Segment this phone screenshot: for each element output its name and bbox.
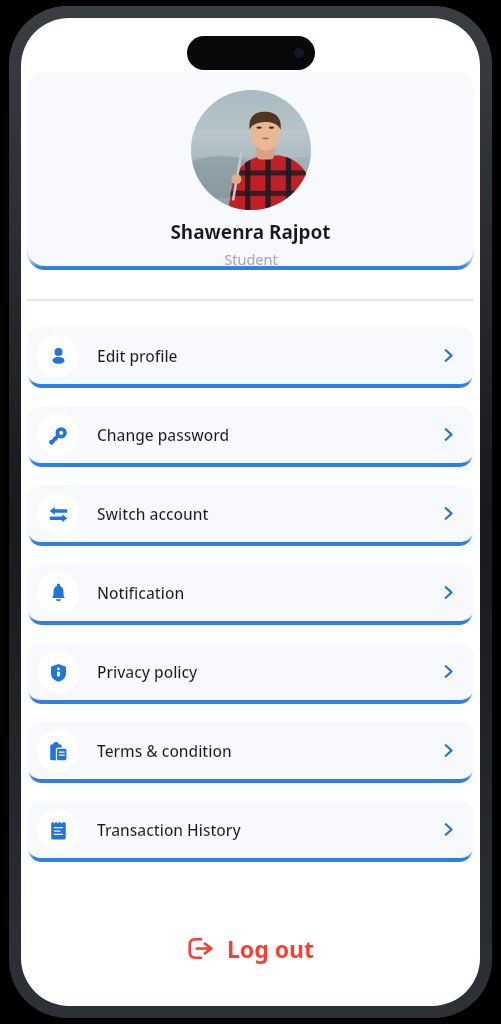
- button[interactable]: Privacy policy: [27, 643, 474, 707]
- other: Open Switch account: [440, 505, 457, 522]
- button[interactable]: Shawenra Rajpot: [27, 72, 474, 272]
- staticText: Student: [224, 249, 278, 266]
- button[interactable]: Edit profile: [27, 327, 474, 391]
- other: Open Edit profile: [440, 347, 457, 364]
- staticText: Privacy policy: [97, 661, 198, 682]
- other: Open Terms & condition: [440, 742, 457, 759]
- staticText: Shawenra Rajpot: [170, 219, 331, 245]
- button[interactable]: Terms & condition: [27, 722, 474, 786]
- staticText: Change password: [97, 424, 230, 445]
- staticText: Edit profile: [97, 345, 178, 366]
- staticText: Switch account: [97, 503, 209, 524]
- button[interactable]: Switch account: [27, 485, 474, 549]
- staticText: Log out: [227, 933, 315, 964]
- button[interactable]: Transaction History: [27, 801, 474, 865]
- staticText: Transaction History: [97, 819, 241, 840]
- button[interactable]: Log out: [173, 925, 329, 972]
- other: Open Privacy policy: [440, 663, 457, 680]
- other: Open Change password: [440, 426, 457, 443]
- staticText: Terms & condition: [97, 740, 232, 761]
- button[interactable]: Notification: [27, 564, 474, 628]
- button[interactable]: Change password: [27, 406, 474, 470]
- other: Open Notification: [440, 584, 457, 601]
- staticText: Notification: [97, 582, 185, 603]
- other: Open Transaction History: [440, 821, 457, 838]
